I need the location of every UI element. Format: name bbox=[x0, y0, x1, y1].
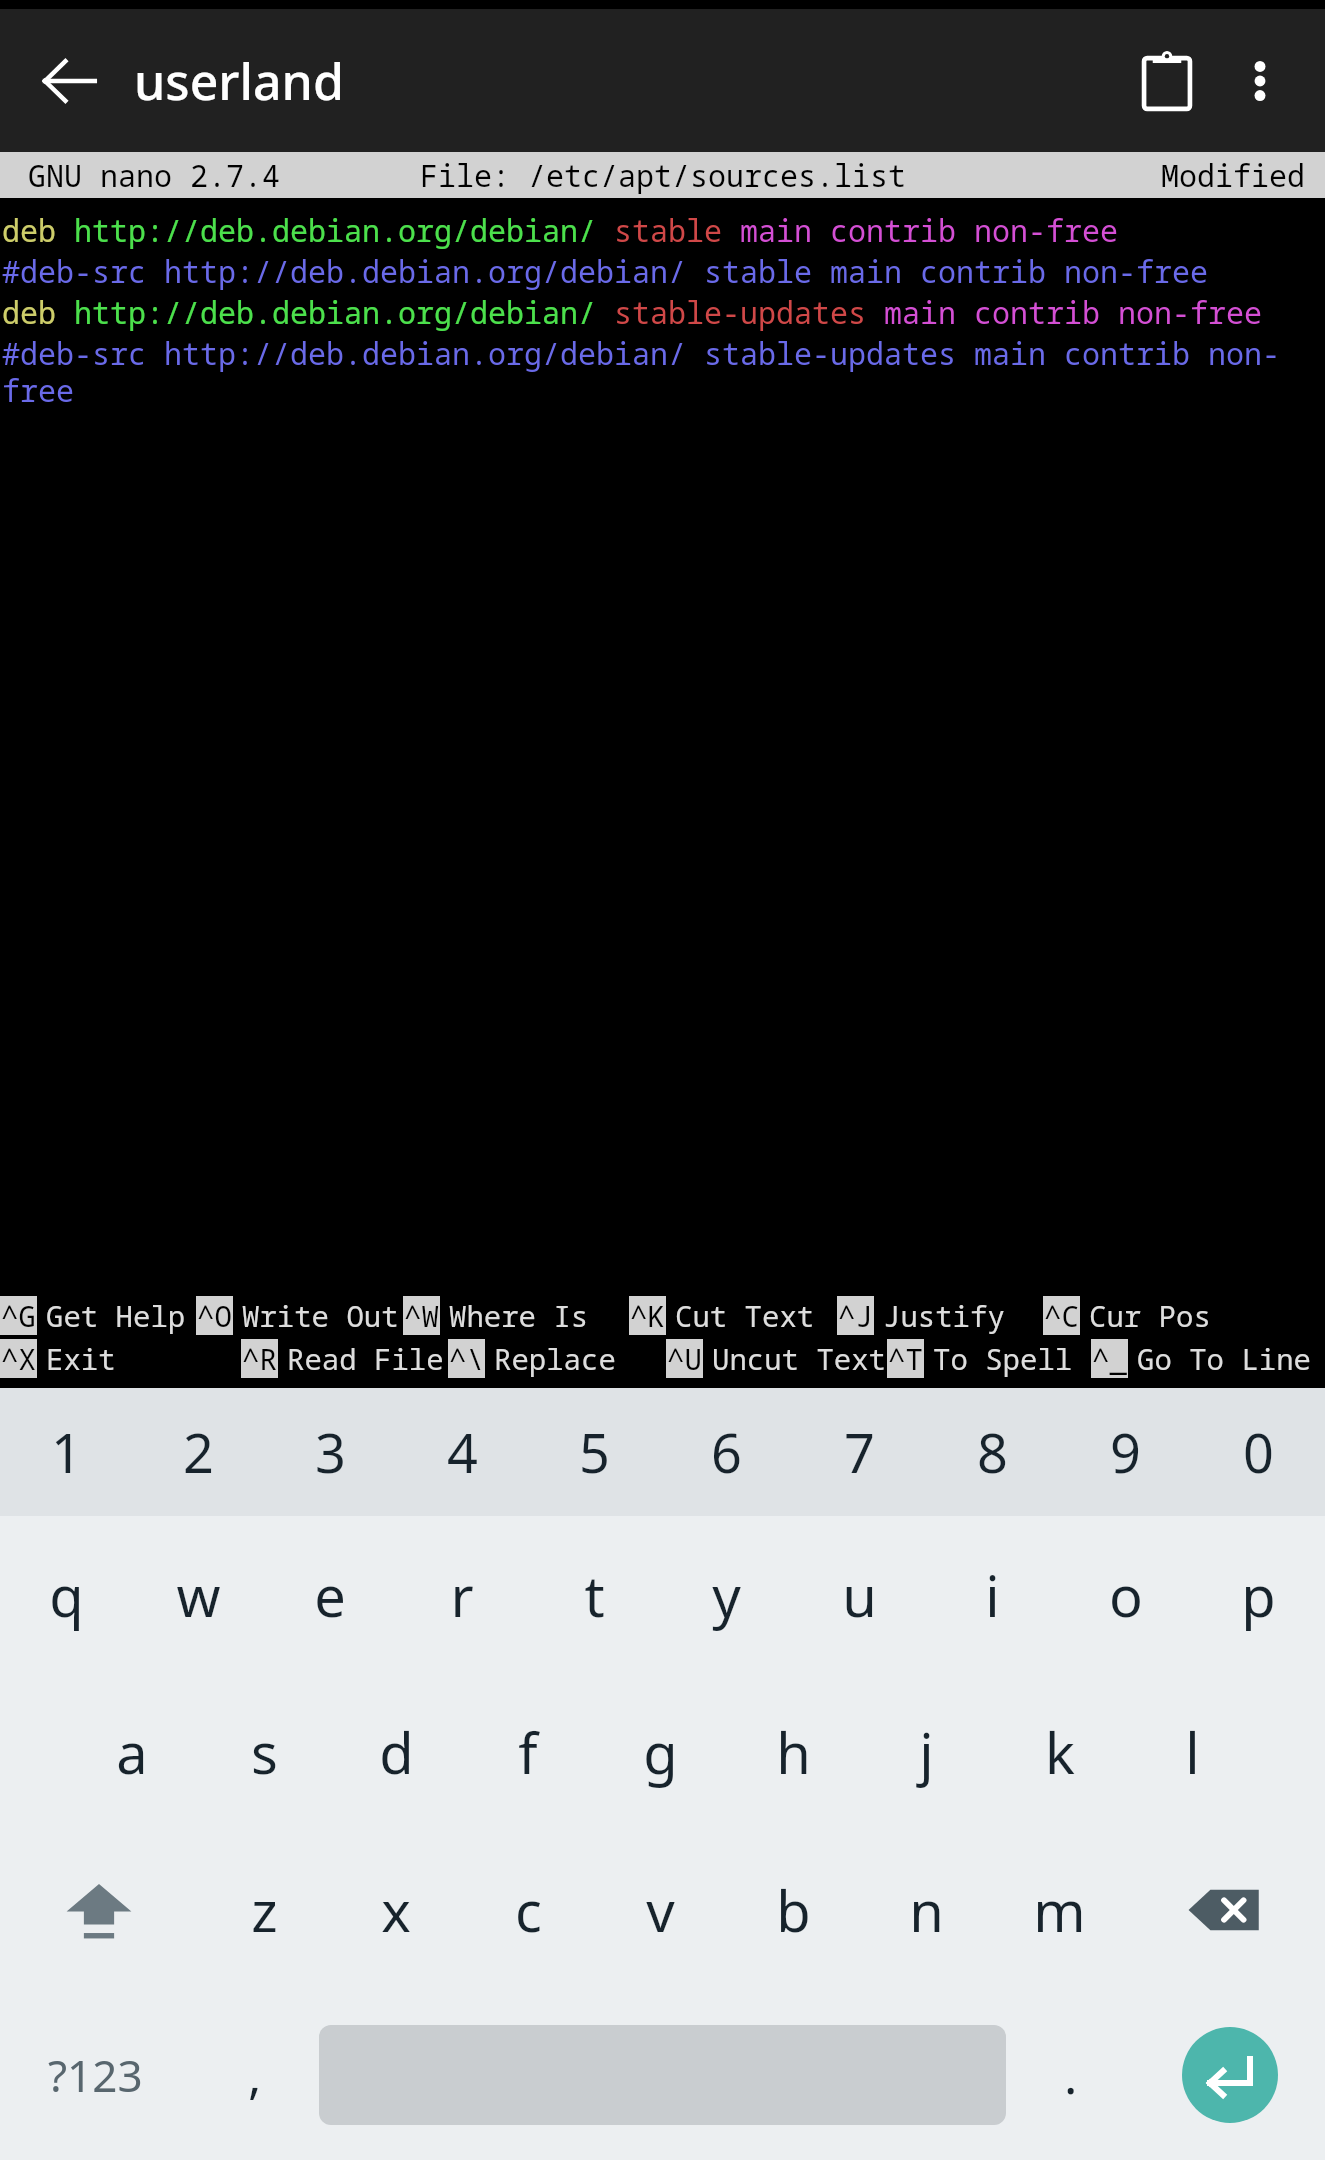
staticText: Justify bbox=[883, 1296, 1005, 1335]
staticText: b bbox=[776, 1872, 811, 1948]
staticText: q bbox=[49, 1557, 84, 1633]
button[interactable]: c bbox=[462, 1830, 594, 1990]
button[interactable]: ^X bbox=[0, 1339, 116, 1378]
button[interactable]: Enter bbox=[1135, 1990, 1325, 2160]
staticText: h bbox=[776, 1714, 811, 1790]
staticText: w bbox=[176, 1557, 221, 1633]
staticText: Read File bbox=[287, 1339, 444, 1378]
button[interactable]: p bbox=[1192, 1516, 1325, 1673]
button[interactable]: d bbox=[330, 1673, 462, 1830]
button[interactable]: ^O bbox=[196, 1296, 399, 1335]
button[interactable]: l bbox=[1126, 1673, 1259, 1830]
button[interactable]: r bbox=[396, 1516, 528, 1673]
button[interactable]: 7 bbox=[793, 1388, 926, 1516]
button[interactable]: ^U bbox=[666, 1339, 887, 1378]
button[interactable]: . bbox=[1006, 1990, 1135, 2160]
button[interactable]: a bbox=[66, 1673, 198, 1830]
button[interactable]: h bbox=[727, 1673, 860, 1830]
button[interactable]: o bbox=[1059, 1516, 1192, 1673]
button[interactable]: ^R bbox=[241, 1339, 444, 1378]
button[interactable]: ^\ bbox=[448, 1339, 616, 1378]
staticText: #deb-src http://deb.debian.org/debian/ s… bbox=[2, 333, 1325, 411]
button[interactable]: u bbox=[793, 1516, 926, 1673]
staticText: 0 bbox=[1243, 1415, 1274, 1489]
button[interactable]: ^G bbox=[0, 1296, 186, 1335]
staticText: Uncut Text bbox=[712, 1339, 887, 1378]
staticText: n bbox=[909, 1872, 944, 1948]
button[interactable]: 1 bbox=[0, 1388, 132, 1516]
button[interactable]: 4 bbox=[396, 1388, 528, 1516]
staticText: Where Is bbox=[449, 1296, 589, 1335]
button[interactable]: b bbox=[727, 1830, 860, 1990]
staticText: k bbox=[1045, 1714, 1075, 1790]
staticText: 4 bbox=[447, 1415, 478, 1489]
button[interactable]: ^T bbox=[887, 1339, 1073, 1378]
button[interactable]: 9 bbox=[1059, 1388, 1192, 1516]
staticText: 9 bbox=[1110, 1415, 1141, 1489]
staticText: 1 bbox=[51, 1415, 82, 1489]
button[interactable]: ^K bbox=[629, 1296, 815, 1335]
staticText: ^X bbox=[1, 1339, 36, 1378]
button[interactable]: z bbox=[198, 1830, 330, 1990]
button[interactable]: m bbox=[993, 1830, 1126, 1990]
staticText: o bbox=[1109, 1557, 1143, 1633]
button[interactable]: Back bbox=[26, 38, 112, 124]
staticText: d bbox=[379, 1714, 414, 1790]
button[interactable]: n bbox=[860, 1830, 993, 1990]
staticText: g bbox=[643, 1714, 678, 1790]
staticText: Go To Line bbox=[1137, 1339, 1312, 1378]
staticText: Get Help bbox=[46, 1296, 186, 1335]
button[interactable]: Clipboard bbox=[1119, 33, 1215, 129]
button[interactable]: f bbox=[462, 1673, 594, 1830]
button[interactable]: x bbox=[330, 1830, 462, 1990]
button[interactable]: y bbox=[660, 1516, 793, 1673]
button[interactable]: 5 bbox=[528, 1388, 660, 1516]
button[interactable]: ?123 bbox=[0, 1990, 190, 2160]
button[interactable]: , bbox=[190, 1990, 319, 2160]
button[interactable]: s bbox=[198, 1673, 330, 1830]
button[interactable]: w bbox=[132, 1516, 264, 1673]
staticText: t bbox=[584, 1557, 605, 1633]
staticText: GNU nano 2.7.4 bbox=[28, 155, 280, 196]
button[interactable]: ^W bbox=[403, 1296, 589, 1335]
button[interactable]: g bbox=[594, 1673, 727, 1830]
staticText: ^J bbox=[838, 1296, 873, 1335]
button[interactable]: e bbox=[264, 1516, 396, 1673]
button[interactable]: k bbox=[993, 1673, 1126, 1830]
button[interactable]: v bbox=[594, 1830, 727, 1990]
staticText: Cur Pos bbox=[1089, 1296, 1211, 1335]
staticText: ?123 bbox=[48, 2045, 143, 2105]
staticText: 2 bbox=[183, 1415, 214, 1489]
button[interactable]: q bbox=[0, 1516, 132, 1673]
staticText: i bbox=[985, 1557, 1000, 1633]
staticText: j bbox=[919, 1714, 934, 1790]
button[interactable] bbox=[319, 1990, 1006, 2160]
button[interactable]: j bbox=[860, 1673, 993, 1830]
staticText: f bbox=[518, 1714, 538, 1790]
button[interactable]: t bbox=[528, 1516, 660, 1673]
staticText: u bbox=[842, 1557, 877, 1633]
button[interactable]: 0 bbox=[1192, 1388, 1325, 1516]
staticText: p bbox=[1241, 1557, 1276, 1633]
button[interactable]: ^J bbox=[837, 1296, 1005, 1335]
button[interactable]: 3 bbox=[264, 1388, 396, 1516]
staticText: deb http://deb.debian.org/debian/ stable… bbox=[2, 292, 1262, 333]
staticText: #deb-src http://deb.debian.org/debian/ s… bbox=[2, 251, 1208, 292]
staticText: s bbox=[251, 1714, 278, 1790]
staticText: v bbox=[646, 1872, 675, 1948]
staticText: To Spell bbox=[933, 1339, 1073, 1378]
staticText: ^G bbox=[1, 1296, 36, 1335]
staticText: , bbox=[248, 2041, 262, 2109]
button[interactable]: Backspace bbox=[1126, 1830, 1325, 1990]
button[interactable]: Shift bbox=[0, 1830, 198, 1990]
button[interactable]: 6 bbox=[660, 1388, 793, 1516]
staticText: Write Out bbox=[242, 1296, 399, 1335]
button[interactable]: 2 bbox=[132, 1388, 264, 1516]
button[interactable]: i bbox=[926, 1516, 1059, 1673]
staticText: ^U bbox=[667, 1339, 702, 1378]
button[interactable]: ^C bbox=[1043, 1296, 1211, 1335]
staticText: m bbox=[1033, 1872, 1086, 1948]
button[interactable]: More options bbox=[1215, 36, 1305, 126]
button[interactable]: ^_ bbox=[1091, 1339, 1312, 1378]
button[interactable]: 8 bbox=[926, 1388, 1059, 1516]
